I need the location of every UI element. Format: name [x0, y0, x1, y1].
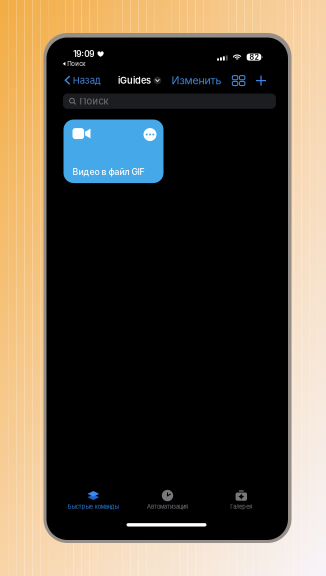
button[interactable]: Видео в файл GIF [63, 120, 163, 183]
staticText: iGuides [118, 75, 151, 86]
button[interactable]: Поиск [63, 93, 276, 109]
button[interactable]: Поиск [61, 58, 87, 69]
staticText: 82 [249, 53, 258, 61]
button[interactable]: Галерея [204, 487, 278, 513]
button[interactable]: Назад [63, 68, 103, 92]
button[interactable]: Grid layout [228, 72, 249, 89]
staticText: Быстрые команды [68, 503, 119, 510]
staticText: Поиск [67, 60, 85, 67]
staticText: Галерея [230, 503, 252, 510]
staticText: Автоматизация [147, 503, 188, 510]
button[interactable]: Add shortcut [252, 72, 270, 90]
staticText: 19:09 [73, 49, 94, 59]
button[interactable]: Быстрые команды [56, 487, 130, 513]
button[interactable]: Изменить [169, 68, 223, 93]
button[interactable]: Автоматизация [130, 487, 204, 513]
staticText: Назад [73, 74, 101, 86]
button[interactable]: iGuides [118, 70, 161, 91]
staticText: Видео в файл GIF [72, 167, 144, 177]
staticText: Поиск [79, 96, 108, 107]
staticText: Изменить [171, 74, 221, 87]
